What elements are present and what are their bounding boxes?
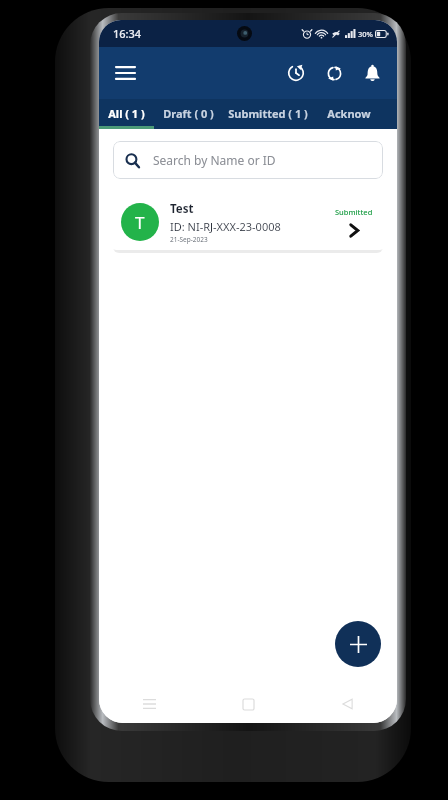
staticText: All ( 1 ) — [108, 106, 145, 121]
staticText: ID: NI-RJ-XXX-23-0008 — [170, 219, 281, 234]
button[interactable]: Back — [298, 685, 397, 723]
button[interactable]: Notifications — [353, 54, 391, 92]
staticText: Acknow — [327, 106, 371, 121]
staticText: 16:34 — [113, 26, 142, 41]
button[interactable]: Sync — [315, 54, 353, 92]
staticText: Search by Name or ID — [153, 152, 276, 168]
staticText: Test — [170, 201, 194, 217]
button[interactable]: All ( 1 ) — [99, 99, 154, 129]
button[interactable]: Open navigation menu — [105, 53, 145, 93]
button[interactable]: History — [277, 54, 315, 92]
staticText: 30% — [358, 29, 373, 39]
button[interactable]: Submitted ( 1 ) — [222, 99, 314, 129]
staticText: Draft ( 0 ) — [163, 106, 214, 121]
button[interactable]: T — [111, 194, 385, 250]
button[interactable]: Recent apps — [99, 685, 199, 723]
button[interactable]: Add new record — [335, 621, 381, 667]
button[interactable]: Search by Name or ID — [113, 141, 383, 179]
staticText: 21-Sep-2023 — [170, 235, 208, 244]
staticText: Submitted — [335, 207, 373, 217]
staticText: Submitted ( 1 ) — [228, 106, 308, 121]
button[interactable]: Draft ( 0 ) — [154, 99, 222, 129]
button[interactable]: Acknow — [314, 99, 384, 129]
staticText: T — [135, 211, 145, 234]
